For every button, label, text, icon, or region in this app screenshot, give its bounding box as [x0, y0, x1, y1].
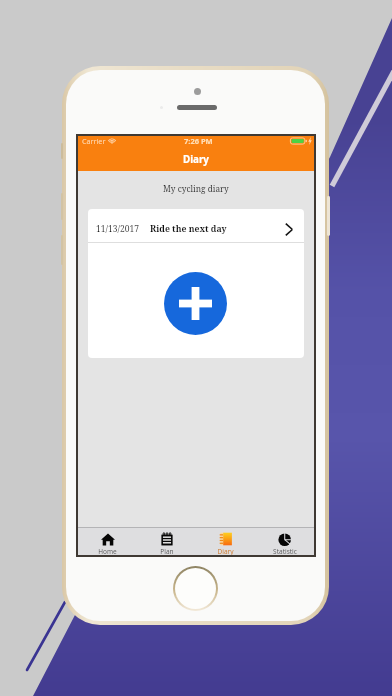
button[interactable]: 11/13/2017	[88, 209, 304, 242]
staticText: Statistic	[273, 547, 297, 555]
button[interactable]: Plan	[137, 528, 196, 555]
staticText: My cycling diary	[163, 183, 229, 194]
staticText: Carrier	[82, 136, 106, 146]
button[interactable]: Home	[78, 528, 137, 555]
button[interactable]: Statistic	[255, 528, 314, 555]
staticText: Home	[98, 547, 117, 555]
staticText: Ride the next day	[150, 223, 227, 235]
button[interactable]: Diary	[196, 528, 255, 555]
staticText: 7:26 PM	[184, 136, 213, 146]
button[interactable]: Add diary entry	[164, 272, 227, 335]
staticText: Diary	[183, 153, 209, 166]
staticText: Diary	[217, 547, 234, 555]
staticText: Plan	[160, 547, 174, 555]
staticText: 11/13/2017	[96, 223, 139, 235]
